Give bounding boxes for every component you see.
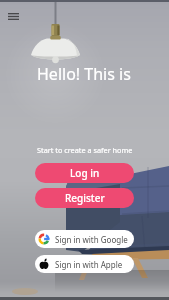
button[interactable]: Register — [35, 188, 134, 208]
staticText: Sign in with Google — [55, 234, 128, 245]
staticText: Sign in with Apple — [55, 259, 123, 270]
staticText: Log in — [70, 166, 100, 180]
button[interactable]: Sign in with Apple — [35, 255, 134, 273]
button[interactable]: Log in — [35, 163, 134, 183]
staticText: Start to create a safer home — [37, 145, 133, 155]
staticText: Hello! This is — [37, 63, 131, 85]
button[interactable]: Sign in with Google — [35, 230, 134, 248]
button[interactable]: Menu — [1, 4, 25, 28]
staticText: Register — [65, 191, 105, 205]
